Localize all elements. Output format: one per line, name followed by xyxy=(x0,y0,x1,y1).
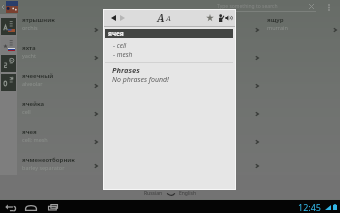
staticText: No phrases found! xyxy=(112,75,169,85)
button[interactable]: ятрышник xyxy=(17,16,101,44)
staticText: ячменеотборник xyxy=(22,156,76,164)
staticText: barley separator xyxy=(22,164,65,171)
staticText: A xyxy=(157,11,165,25)
staticText: ячеечный xyxy=(22,72,54,80)
button[interactable]: Home xyxy=(24,201,38,212)
button[interactable]: Up xyxy=(1,5,5,9)
staticText: ячея xyxy=(22,128,37,136)
staticText: cell xyxy=(22,108,31,115)
staticText: yacht xyxy=(22,52,36,59)
staticText: barley xyxy=(106,52,122,59)
button[interactable]: Back xyxy=(3,201,17,212)
staticText: English xyxy=(179,190,197,197)
staticText: cell; mesh xyxy=(22,136,48,143)
staticText: orchis xyxy=(22,24,38,31)
button[interactable]: Dictionary 0 xyxy=(1,74,16,91)
button[interactable]: More options xyxy=(318,0,340,14)
button[interactable]: ячмень xyxy=(101,44,262,72)
staticText: barley xyxy=(106,24,122,31)
button[interactable]: ячменеотборник xyxy=(17,156,101,175)
button[interactable]: ячеечный xyxy=(17,72,101,100)
button[interactable]: Back xyxy=(108,13,119,23)
staticText: яхта xyxy=(22,44,36,52)
button[interactable]: Forward xyxy=(117,13,128,23)
staticText: Russian xyxy=(144,190,163,197)
staticText: - cell xyxy=(113,41,127,50)
staticText: Phrases xyxy=(112,65,140,75)
staticText: - mesh xyxy=(113,50,133,59)
button[interactable]: Dictionary * xyxy=(1,37,16,54)
button[interactable]: Font size xyxy=(157,11,171,25)
button[interactable]: Russian xyxy=(130,189,210,198)
button[interactable]: Pronounce xyxy=(217,13,226,22)
button[interactable]: Favourite xyxy=(205,13,215,23)
button[interactable]: ящур xyxy=(262,16,340,44)
staticText: alveolar xyxy=(22,80,43,87)
staticText: ячейка xyxy=(22,100,45,108)
staticText: A xyxy=(166,14,171,24)
button[interactable]: Dictionary A xyxy=(1,18,16,35)
button[interactable]: Play audio xyxy=(224,14,233,22)
staticText: Type something to search xyxy=(217,3,278,10)
button[interactable]: Recent apps xyxy=(46,201,60,212)
staticText: 12:45 xyxy=(298,201,322,213)
button[interactable]: ячменно-солодовый экстракт продуктов xyxy=(101,72,262,100)
button[interactable]: Dictionary 2 xyxy=(1,55,16,72)
button[interactable]: ячейка xyxy=(17,100,101,128)
button[interactable]: ячменный xyxy=(101,16,262,44)
button[interactable]: App icon xyxy=(6,1,18,13)
staticText: ячмень xyxy=(106,44,130,52)
button[interactable]: яхта xyxy=(17,44,101,72)
staticText: ячменно-солодовый экстракт продуктов xyxy=(106,72,233,80)
staticText: ячея xyxy=(108,29,124,38)
staticText: murrain xyxy=(267,24,288,31)
staticText: barley malt extract xyxy=(106,80,155,87)
staticText: ячменный xyxy=(106,16,140,24)
button[interactable]: Search field xyxy=(216,1,318,14)
staticText: ятрышник xyxy=(22,16,55,24)
staticText: ящур xyxy=(267,16,284,24)
button[interactable]: ящик xyxy=(101,128,262,156)
button[interactable]: ящичный xyxy=(101,156,262,175)
button[interactable]: ячея xyxy=(17,128,101,156)
button[interactable]: ящерица xyxy=(101,100,262,128)
